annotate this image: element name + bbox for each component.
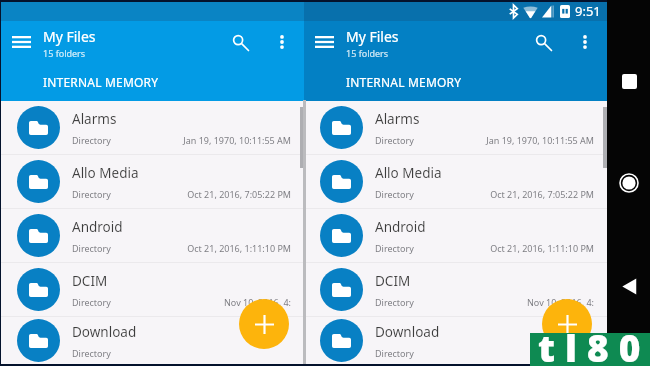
button[interactable]: Add: [542, 299, 592, 349]
staticText: Directory: [375, 188, 414, 200]
staticText: Jan 19, 1970, 10:11:55 AM: [486, 134, 594, 146]
staticText: Allo Media: [72, 164, 139, 182]
staticText: Oct 21, 2016, 1:11:10 PM: [187, 242, 291, 254]
button[interactable]: Search: [227, 29, 253, 55]
button[interactable]: Home: [619, 173, 639, 193]
button[interactable]: INTERNAL MEMORY: [1, 69, 159, 101]
button[interactable]: Back: [622, 278, 639, 295]
button[interactable]: More options: [572, 29, 598, 55]
button[interactable]: Recents: [622, 74, 637, 89]
button[interactable]: More options: [269, 29, 295, 55]
button[interactable]: INTERNAL MEMORY: [304, 69, 462, 101]
button[interactable]: Download: [1, 317, 304, 364]
staticText: tl80: [538, 322, 650, 362]
staticText: 15 folders: [43, 47, 86, 59]
button[interactable]: Android: [1, 209, 304, 262]
staticText: Directory: [72, 347, 111, 359]
staticText: Directory: [375, 347, 414, 359]
staticText: Android: [72, 218, 123, 236]
button[interactable]: Download: [304, 317, 607, 364]
staticText: Directory: [72, 296, 111, 308]
staticText: Directory: [375, 242, 414, 254]
staticText: Android: [375, 218, 426, 236]
staticText: Directory: [375, 134, 414, 146]
staticText: Directory: [72, 134, 111, 146]
button[interactable]: Alarms: [304, 101, 607, 154]
button[interactable]: Add: [239, 299, 289, 349]
button[interactable]: Search: [530, 29, 556, 55]
staticText: Download: [72, 323, 137, 341]
staticText: 15 folders: [346, 47, 389, 59]
staticText: 9:51: [575, 2, 601, 20]
staticText: Alarms: [375, 110, 420, 128]
staticText: Alarms: [72, 110, 117, 128]
staticText: Oct 21, 2016, 7:05:22 PM: [490, 188, 594, 200]
staticText: Jan 19, 1970, 10:11:55 AM: [183, 134, 291, 146]
button[interactable]: Open navigation drawer: [312, 30, 336, 54]
staticText: Download: [375, 323, 440, 341]
staticText: Allo Media: [375, 164, 442, 182]
staticText: Directory: [72, 188, 111, 200]
staticText: Directory: [375, 296, 414, 308]
staticText: Nov 10, 2016, 4:: [527, 296, 594, 308]
staticText: My Files: [346, 27, 399, 46]
staticText: DCIM: [72, 272, 108, 290]
button[interactable]: DCIM: [304, 263, 607, 316]
button[interactable]: Android: [304, 209, 607, 262]
button[interactable]: DCIM: [1, 263, 304, 316]
staticText: Nov 10, 2016, 4:: [224, 296, 291, 308]
staticText: Directory: [72, 242, 111, 254]
staticText: My Files: [43, 27, 96, 46]
staticText: DCIM: [375, 272, 411, 290]
button[interactable]: Allo Media: [1, 155, 304, 208]
button[interactable]: Open navigation drawer: [9, 30, 33, 54]
button[interactable]: Allo Media: [304, 155, 607, 208]
button[interactable]: Alarms: [1, 101, 304, 154]
staticText: INTERNAL MEMORY: [43, 74, 159, 90]
staticText: Oct 21, 2016, 7:05:22 PM: [187, 188, 291, 200]
staticText: INTERNAL MEMORY: [346, 74, 462, 90]
staticText: Oct 21, 2016, 1:11:10 PM: [490, 242, 594, 254]
